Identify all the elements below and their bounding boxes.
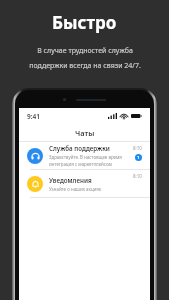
staticText: 9:41 — [27, 112, 40, 121]
staticText: 1 — [137, 155, 140, 161]
button[interactable]: Support — [19, 142, 150, 169]
staticText: поддержки всегда на связи 24/7. — [29, 61, 141, 71]
staticText: В случае трудностей служба — [37, 46, 133, 56]
staticText: Здравствуйте. В настоящее время ведется — [49, 154, 129, 160]
staticText: Чаты — [75, 128, 95, 138]
staticText: Узнайте о наших акциях — [49, 186, 102, 192]
staticText: Быстро — [52, 11, 117, 34]
staticText: 8:10 — [133, 145, 142, 151]
staticText: 8:10 — [133, 173, 142, 179]
other: Notifications — [31, 180, 40, 189]
staticText: Служба поддержки — [49, 144, 110, 152]
staticText: Уведомления — [49, 176, 92, 184]
staticText: интеграция с маркетплейсом Kazan ... — [49, 161, 129, 167]
button[interactable]: Notifications — [19, 170, 150, 197]
other: Support — [31, 152, 40, 161]
